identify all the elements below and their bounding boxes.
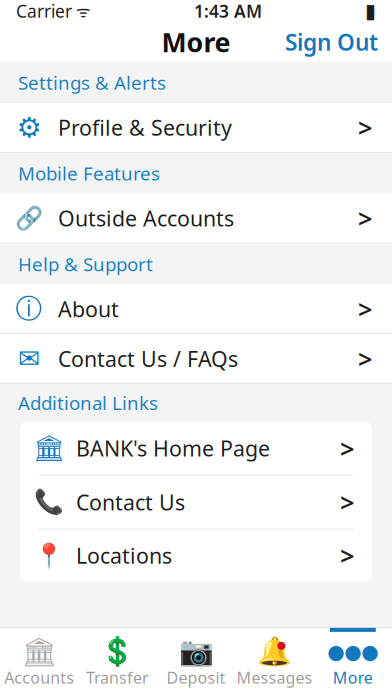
button[interactable]: 📷 [157,628,235,696]
staticText: ▮ [365,0,376,22]
staticText: Accounts [4,667,74,688]
staticText: More [161,24,230,60]
staticText: > [358,292,372,326]
staticText: ✉ [18,343,40,374]
staticText: 📍 [34,542,64,569]
staticText: BANK's Home Page [76,434,270,462]
staticText: > [340,431,354,465]
staticText: 📷 [178,636,213,668]
button[interactable]: ⓘ [0,284,392,334]
staticText: 🔗 [15,205,43,231]
button[interactable]: 📍 [20,529,372,581]
staticText: ⓘ [15,292,42,325]
staticText: Transfer [86,667,149,688]
button[interactable]: ✉ [0,334,392,384]
staticText: > [358,111,372,144]
staticText: Carrier [16,0,72,22]
staticText: More [333,667,373,688]
button[interactable]: 📞 [20,476,372,529]
staticText: > [358,201,372,235]
staticText: > [340,539,354,572]
button[interactable]: 💲 [78,628,157,696]
staticText: About [58,295,119,323]
staticText: > [358,342,372,375]
button[interactable]: ●●● [314,628,392,696]
button[interactable]: 🏛 [0,628,78,696]
staticText: 📞 [34,488,64,516]
button[interactable]: 🔔 [235,628,314,696]
staticText: Profile & Security [58,113,232,142]
button[interactable]: 🏛 [20,422,372,476]
staticText: Contact Us [76,488,185,516]
staticText: Help & Support [18,251,153,276]
staticText: > [340,485,354,519]
staticText: Locations [76,541,172,569]
staticText: ⚙ [16,112,41,143]
staticText: 🏛 [21,636,57,668]
staticText: ●●● [327,640,378,663]
button[interactable]: 🔗 [0,194,392,243]
staticText: 🔔 [257,636,292,668]
staticText: Deposit [166,667,225,688]
staticText: Additional Links [18,390,158,415]
staticText: Contact Us / FAQs [58,344,238,373]
staticText: Sign Out [285,27,378,57]
staticText: Messages [236,667,312,688]
button[interactable]: ⚙ [0,103,392,153]
staticText: 💲 [100,636,135,668]
button[interactable]: Sign Out [271,21,392,63]
staticText: 🏛 [33,434,65,463]
staticText: Outside Accounts [58,204,234,232]
staticText: Settings & Alerts [18,70,166,95]
staticText: Mobile Features [18,161,160,186]
staticText: 1:43 AM [194,0,262,22]
staticText: ᯤ [72,0,91,22]
